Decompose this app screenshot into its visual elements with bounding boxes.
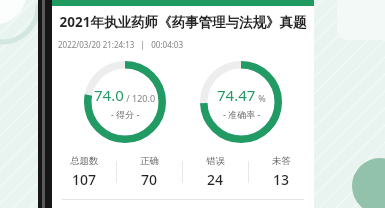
staticText: 错误 (206, 155, 225, 167)
staticText: 13 (273, 170, 290, 189)
button[interactable]: 错误 (183, 151, 248, 193)
staticText: 未答 (272, 155, 291, 167)
staticText: 107 (72, 170, 97, 189)
staticText: 74.0 (94, 85, 124, 105)
staticText: 24 (207, 170, 224, 189)
staticText: 2021年执业药师《药事管理与法规》真题 (56, 13, 310, 31)
staticText: 正确 (140, 155, 159, 167)
button[interactable]: 正确 (117, 151, 182, 193)
button[interactable]: 未答 (249, 151, 314, 193)
button[interactable]: 总题数 (52, 151, 116, 193)
button[interactable]: Accuracy ring 74.47 percent (198, 59, 284, 145)
staticText: 70 (141, 170, 158, 189)
staticText: / 120.0 (124, 92, 156, 104)
staticText: 总题数 (70, 155, 99, 167)
button[interactable]: Score ring 74.0 of 120.0 (82, 59, 168, 145)
staticText: 2022/03/20 21:24:13 | 00:04:03 (58, 39, 184, 50)
staticText: % (256, 92, 266, 104)
staticText: 74.47 (217, 85, 256, 105)
staticText: - 准确率 - (223, 108, 261, 120)
staticText: - 得分 - (111, 108, 140, 120)
